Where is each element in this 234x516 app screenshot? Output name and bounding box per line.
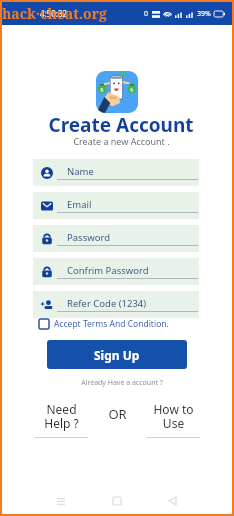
staticText: hack·cheat.org (2, 4, 107, 23)
button[interactable]: Back (161, 490, 183, 512)
staticText: Name (67, 165, 94, 178)
button[interactable]: Email (33, 192, 199, 219)
staticText: Sign Up (94, 347, 140, 363)
staticText: Create Account (48, 112, 194, 138)
staticText: Confrim Password (67, 264, 149, 277)
button[interactable]: How to Use (133, 401, 213, 438)
button[interactable]: Home (106, 490, 128, 512)
button[interactable]: Sign Up (47, 340, 187, 369)
staticText: Accept Terms And Condition. (54, 318, 169, 330)
staticText: Need Help ? (44, 401, 79, 432)
button[interactable]: Need Help ? (21, 401, 101, 438)
staticText: 0 (144, 9, 149, 19)
staticText: Create a new Account . (73, 135, 170, 147)
button[interactable]: Name (33, 159, 199, 186)
button[interactable]: Recents (50, 490, 72, 512)
staticText: Password (67, 231, 110, 244)
staticText: Email (67, 198, 92, 211)
button[interactable]: Password (33, 225, 199, 252)
staticText: OR (108, 405, 127, 423)
staticText: 4:50:32 (40, 8, 68, 19)
button[interactable]: Accept Terms And Condition. (39, 317, 169, 331)
staticText: 39% (197, 9, 211, 19)
button[interactable]: Already Have a account ? (81, 378, 163, 388)
button[interactable]: Refer Code (1234) (33, 291, 199, 318)
staticText: How to Use (153, 401, 194, 432)
staticText: Refer Code (1234) (67, 297, 147, 310)
button[interactable]: Confrim Password (33, 258, 199, 285)
